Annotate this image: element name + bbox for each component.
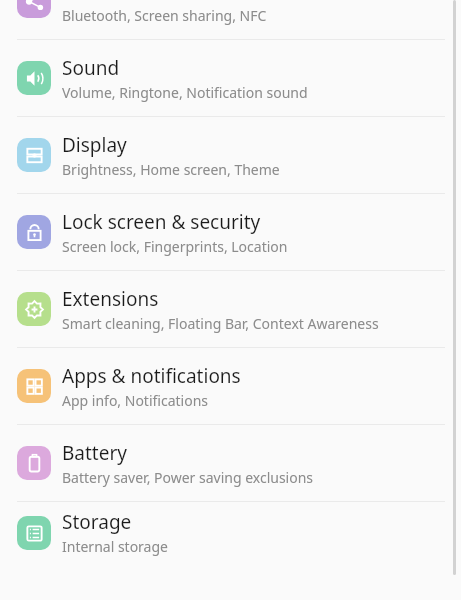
button[interactable]: Sound xyxy=(0,40,461,116)
staticText: Display xyxy=(62,132,127,158)
other: Battery xyxy=(17,446,51,480)
staticText: Storage xyxy=(62,509,132,535)
other: Connected devices xyxy=(17,0,51,18)
other: Sound xyxy=(17,61,51,95)
staticText: Volume, Ringtone, Notification sound xyxy=(62,83,308,102)
other: Display xyxy=(17,138,51,172)
staticText: Battery saver, Power saving exclusions xyxy=(62,468,314,487)
staticText: Smart cleaning, Floating Bar, Context Aw… xyxy=(62,314,379,333)
staticText: Brightness, Home screen, Theme xyxy=(62,160,280,179)
other: Lock screen & security xyxy=(17,215,51,249)
button[interactable]: Battery xyxy=(0,425,461,501)
staticText: Sound xyxy=(62,55,120,81)
button[interactable]: Storage xyxy=(0,502,461,563)
staticText: Battery xyxy=(62,440,127,466)
other: Apps & notifications xyxy=(17,369,51,403)
button[interactable]: Lock screen & security xyxy=(0,194,461,270)
staticText: Bluetooth, Screen sharing, NFC xyxy=(62,6,267,25)
staticText: Screen lock, Fingerprints, Location xyxy=(62,237,288,256)
staticText: Apps & notifications xyxy=(62,363,241,389)
staticText: Internal storage xyxy=(62,537,168,556)
staticText: Lock screen & security xyxy=(62,209,261,235)
other: Extensions xyxy=(17,292,51,326)
staticText: Extensions xyxy=(62,286,159,312)
button[interactable]: Apps & notifications xyxy=(0,348,461,424)
staticText: App info, Notifications xyxy=(62,391,209,410)
button[interactable]: Display xyxy=(0,117,461,193)
button[interactable]: Extensions xyxy=(0,271,461,347)
other: Storage xyxy=(17,516,51,550)
button[interactable]: Connected devices xyxy=(0,0,461,39)
